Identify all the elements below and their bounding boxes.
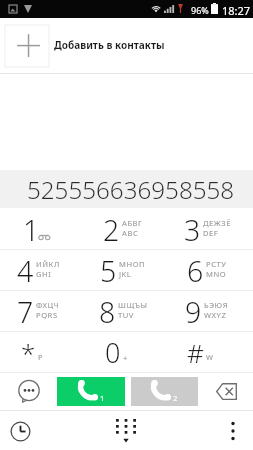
staticText: ДЕЖЗЁ <box>203 218 231 228</box>
staticText: ABC <box>122 228 139 238</box>
staticText: 1 <box>100 393 105 403</box>
staticText: 1 <box>23 211 40 250</box>
staticText: + <box>123 353 128 363</box>
staticText: WXYZ <box>204 310 227 320</box>
button[interactable]: More options <box>213 411 253 450</box>
staticText: МНОП <box>119 259 146 269</box>
staticText: АБВГ <box>122 218 143 228</box>
staticText: MNO <box>206 269 227 279</box>
staticText: 5 <box>100 252 117 291</box>
staticText: ШЩЪЫ <box>118 300 148 310</box>
staticText: 9 <box>185 293 202 332</box>
staticText: GHI <box>36 269 52 279</box>
staticText: 7 <box>17 293 34 332</box>
staticText: 2 <box>173 393 178 403</box>
button[interactable]: # <box>169 332 253 372</box>
staticText: 2 <box>103 211 120 250</box>
button[interactable]: 2 <box>85 209 169 249</box>
staticText: PQRS <box>36 310 58 320</box>
button[interactable]: 5 <box>85 250 169 290</box>
staticText: ИЙКЛ <box>36 259 60 269</box>
staticText: # <box>187 335 204 370</box>
button[interactable]: 3 <box>169 209 253 249</box>
staticText: DEF <box>203 228 219 238</box>
button[interactable]: 7 <box>0 291 85 331</box>
staticText: P <box>38 352 43 362</box>
staticText: JKL <box>119 269 132 279</box>
staticText: 525556636958558 <box>27 173 235 206</box>
staticText: 4 <box>17 252 34 291</box>
button[interactable]: * <box>0 332 85 372</box>
staticText: ФХЦЧ <box>36 300 60 310</box>
staticText: 96% <box>191 4 209 16</box>
staticText: 6 <box>187 252 204 291</box>
button[interactable]: 6 <box>169 250 253 290</box>
staticText: 0 <box>105 334 121 371</box>
button[interactable]: Dialpad <box>106 410 146 450</box>
staticText: W <box>206 352 213 362</box>
button[interactable]: 0 <box>85 332 169 372</box>
button[interactable]: 9 <box>169 291 253 331</box>
staticText: TUV <box>118 310 134 320</box>
staticText: Добавить в контакты <box>54 38 165 52</box>
staticText: 8 <box>99 293 116 332</box>
button[interactable]: Send message <box>4 374 53 408</box>
button[interactable]: Call with SIM 2 <box>131 377 198 406</box>
button[interactable]: Call with SIM 1 <box>57 377 125 406</box>
button[interactable]: 4 <box>0 250 85 290</box>
staticText: * <box>21 335 36 370</box>
staticText: ЬЭЮЯ <box>204 300 229 310</box>
button[interactable]: Backspace <box>203 374 249 408</box>
button[interactable]: Call log <box>0 411 40 450</box>
staticText: РСТУ <box>206 259 227 269</box>
button[interactable]: 8 <box>85 291 169 331</box>
staticText: 3 <box>184 211 201 250</box>
button[interactable]: 1 <box>0 209 85 249</box>
button[interactable]: Добавить в контакты <box>0 18 253 74</box>
staticText: 18:27 <box>222 3 251 18</box>
